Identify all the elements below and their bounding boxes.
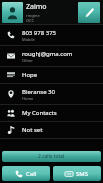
button[interactable]: Hope: [0, 67, 103, 83]
button[interactable]: 803 978 375: [0, 25, 103, 45]
button[interactable]: My Contacts: [0, 105, 103, 121]
staticText: My Contacts: [22, 109, 57, 117]
staticText: Not set: [22, 126, 43, 134]
button[interactable]: Bieranse 30: [0, 84, 103, 104]
button[interactable]: Contact photo: [2, 2, 23, 23]
staticText: Mobile: [22, 37, 35, 42]
staticText: Home: [22, 96, 34, 101]
button[interactable]: SMS: [53, 166, 101, 181]
staticText: Hope: [22, 71, 38, 79]
staticText: Zaimo: [26, 2, 47, 12]
button[interactable]: Call: [2, 166, 50, 181]
staticText: Other: [22, 58, 33, 63]
staticText: Bieranse 30: [22, 88, 55, 96]
staticText: OCC: [26, 18, 35, 23]
staticText: 803 978 375: [22, 29, 57, 37]
button[interactable]: 2 calls total: [2, 151, 101, 162]
button[interactable]: Not set: [0, 122, 103, 138]
staticText: roughj@gma.com: [22, 50, 73, 58]
staticText: 2 calls total: [38, 153, 65, 160]
staticText: ringtne: [26, 13, 40, 18]
button[interactable]: roughj@gma.com: [0, 46, 103, 66]
staticText: Call: [26, 170, 37, 178]
button[interactable]: Edit contact: [78, 2, 100, 23]
staticText: SMS: [76, 170, 89, 178]
